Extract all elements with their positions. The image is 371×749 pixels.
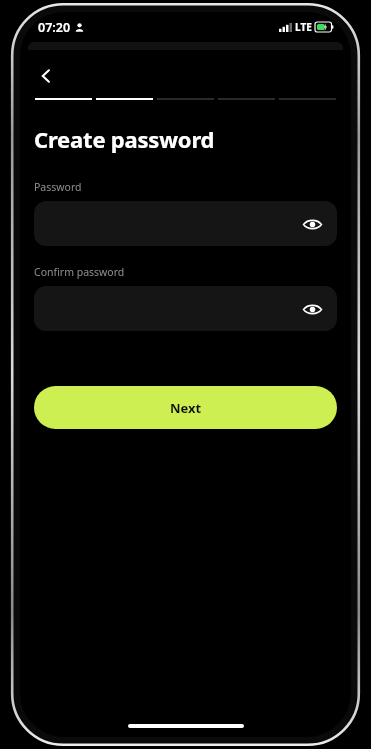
staticText: Next (170, 399, 202, 417)
button[interactable]: Back (26, 56, 66, 96)
button[interactable]: Show password (34, 201, 337, 246)
button[interactable]: Show password (34, 286, 337, 331)
staticText: LTE (295, 20, 312, 34)
staticText: Confirm password (34, 265, 125, 279)
staticText: Create password (34, 124, 215, 154)
staticText: Password (34, 180, 82, 194)
button[interactable]: Show password (295, 207, 329, 241)
button[interactable]: Next (34, 386, 337, 429)
staticText: 07:20 (38, 19, 71, 36)
button[interactable]: Show password (295, 292, 329, 326)
